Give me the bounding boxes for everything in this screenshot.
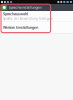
staticText: Sprachauswahl bbox=[3, 11, 28, 16]
staticText: Spracheinstellungen bbox=[9, 5, 42, 10]
button[interactable]: Weitere Einstellungen bbox=[0, 21, 73, 33]
button[interactable]: Sprachauswahl bbox=[0, 11, 73, 21]
button[interactable]: Spracheinstellungen bbox=[0, 4, 73, 11]
staticText: Sprache der Anwendung festlegen bbox=[3, 17, 53, 20]
staticText: Weitere Einstellungen bbox=[3, 25, 38, 30]
